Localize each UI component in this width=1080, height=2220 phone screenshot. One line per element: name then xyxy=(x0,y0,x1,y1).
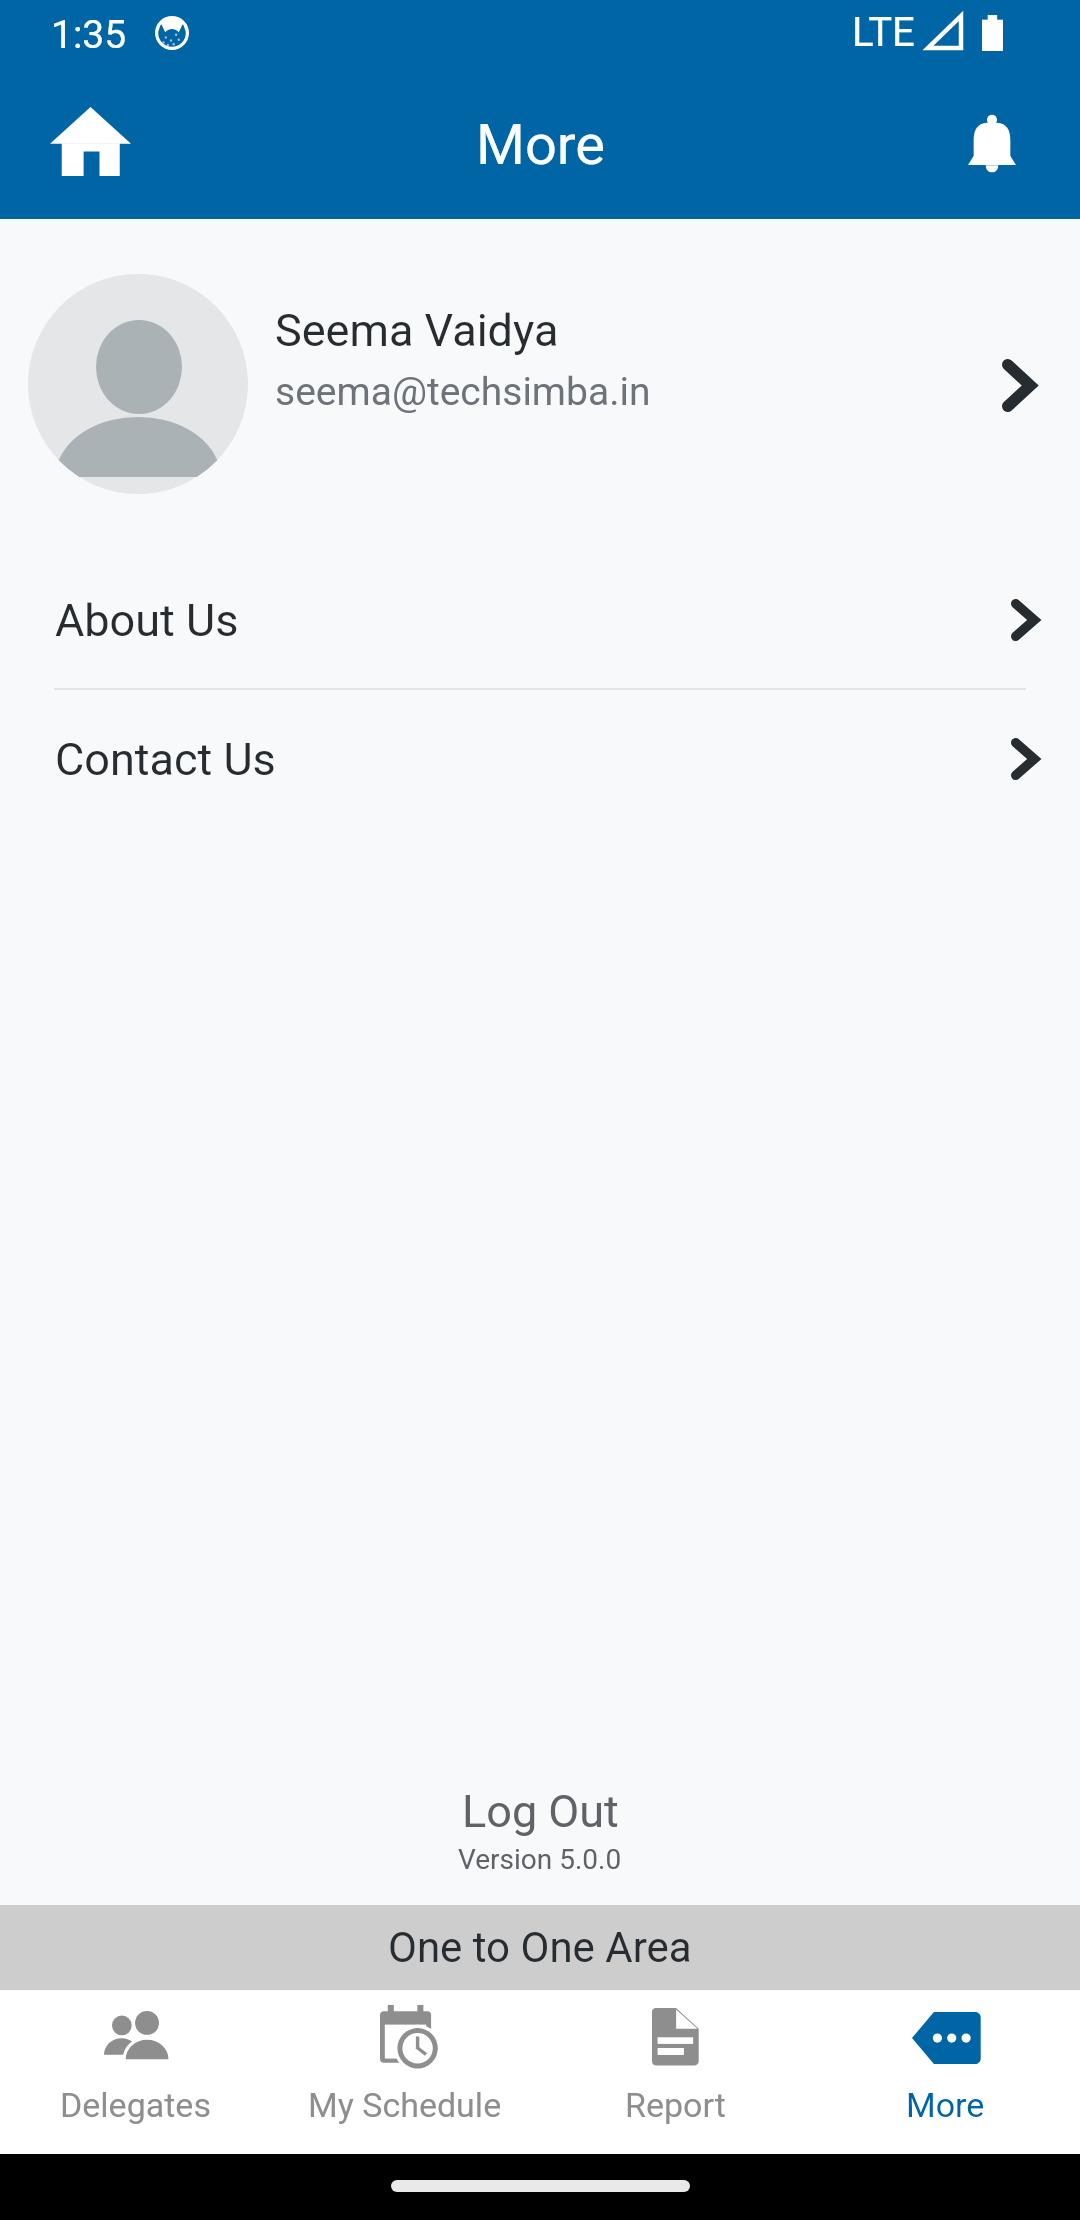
staticText: Delegates xyxy=(60,2085,211,2125)
button[interactable]: Home xyxy=(28,79,152,203)
staticText: Contact Us xyxy=(55,733,276,786)
staticText: LTE xyxy=(852,9,915,56)
staticText: Seema Vaidya xyxy=(275,304,559,357)
button[interactable]: My Schedule xyxy=(270,1990,540,2154)
staticText: More xyxy=(476,112,605,178)
button[interactable]: Notifications xyxy=(937,89,1047,199)
staticText: One to One Area xyxy=(388,1923,692,1972)
button[interactable]: Seema Vaidya xyxy=(0,230,1080,530)
staticText: About Us xyxy=(55,594,239,647)
button[interactable]: About Us xyxy=(0,551,1080,689)
button[interactable]: Log Out xyxy=(0,1785,1080,1876)
button[interactable]: Delegates xyxy=(0,1990,270,2154)
staticText: Version 5.0.0 xyxy=(458,1843,622,1876)
staticText: My Schedule xyxy=(308,2085,502,2125)
button[interactable]: Report xyxy=(540,1990,810,2154)
staticText: seema@techsimba.in xyxy=(275,369,651,415)
button[interactable]: One to One Area xyxy=(0,1905,1080,1990)
staticText: Report xyxy=(625,2085,726,2125)
button[interactable]: More xyxy=(810,1990,1080,2154)
staticText: Log Out xyxy=(462,1785,619,1838)
staticText: More xyxy=(906,2085,985,2125)
button[interactable]: Contact Us xyxy=(0,690,1080,828)
staticText: 1:35 xyxy=(51,12,127,58)
